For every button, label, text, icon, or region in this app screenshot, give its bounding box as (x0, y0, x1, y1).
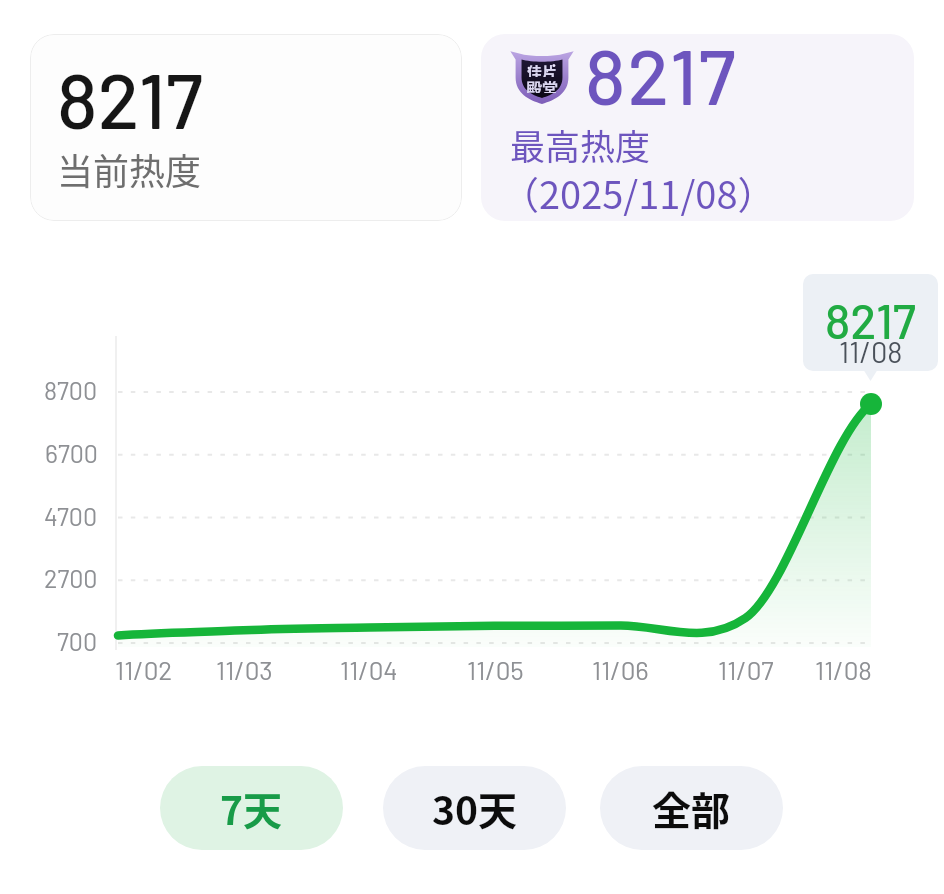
staticText: 11/08 (839, 334, 903, 369)
button[interactable]: 8217 (30, 34, 462, 221)
staticText: 8217 (57, 52, 203, 144)
staticText: 4700 (44, 501, 98, 531)
staticText: （2025/11/08） (501, 165, 776, 220)
staticText: 8217 (585, 34, 738, 120)
staticText: 11/02 (115, 654, 173, 685)
other: 佳片殿堂 badge (509, 44, 575, 104)
staticText: 11/08 (815, 654, 872, 685)
staticText: 11/05 (467, 654, 524, 685)
staticText: 2700 (44, 563, 98, 593)
staticText: 佳片 (527, 61, 558, 77)
staticText: 8700 (44, 375, 98, 405)
staticText: 11/03 (216, 654, 273, 685)
staticText: 7天 (220, 780, 283, 836)
staticText: 当前热度 (57, 143, 202, 195)
staticText: 11/07 (718, 654, 774, 685)
button[interactable]: 佳片殿堂 badge (481, 34, 914, 221)
button[interactable]: 全部 (600, 766, 783, 850)
staticText: 30天 (432, 780, 518, 836)
staticText: 11/06 (592, 654, 649, 685)
staticText: 6700 (45, 438, 98, 468)
button[interactable]: 7天 (160, 766, 343, 850)
staticText: 700 (57, 626, 98, 656)
staticText: 全部 (652, 780, 731, 836)
staticText: 8217 (825, 291, 916, 349)
button[interactable]: 30天 (383, 766, 566, 850)
staticText: 11/04 (340, 654, 398, 685)
staticText: 最高热度 (510, 119, 651, 170)
staticText: 殿堂 (526, 76, 559, 93)
